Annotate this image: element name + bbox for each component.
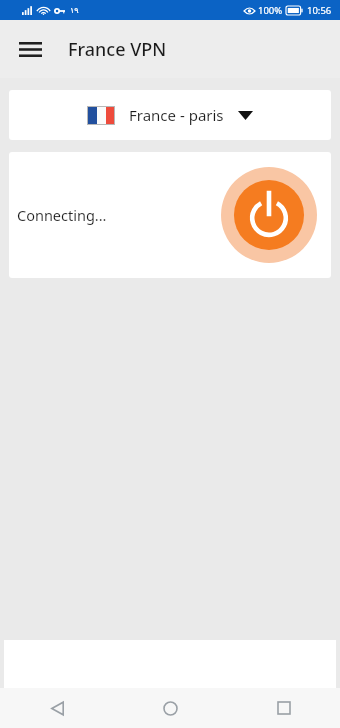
button[interactable]: Back — [0, 688, 114, 728]
staticText: 100% — [258, 4, 283, 17]
staticText: France - paris — [129, 105, 224, 125]
staticText: Connecting... — [17, 205, 107, 225]
button[interactable]: Connect VPN — [221, 167, 317, 263]
button[interactable]: Recent apps — [227, 688, 340, 728]
button[interactable]: France - paris — [9, 90, 331, 140]
button[interactable]: Home — [114, 688, 227, 728]
staticText: France VPN — [68, 37, 167, 62]
staticText: 10:56 — [307, 4, 332, 17]
staticText: ١٩ — [70, 6, 79, 15]
button[interactable]: Open navigation menu — [10, 29, 50, 69]
